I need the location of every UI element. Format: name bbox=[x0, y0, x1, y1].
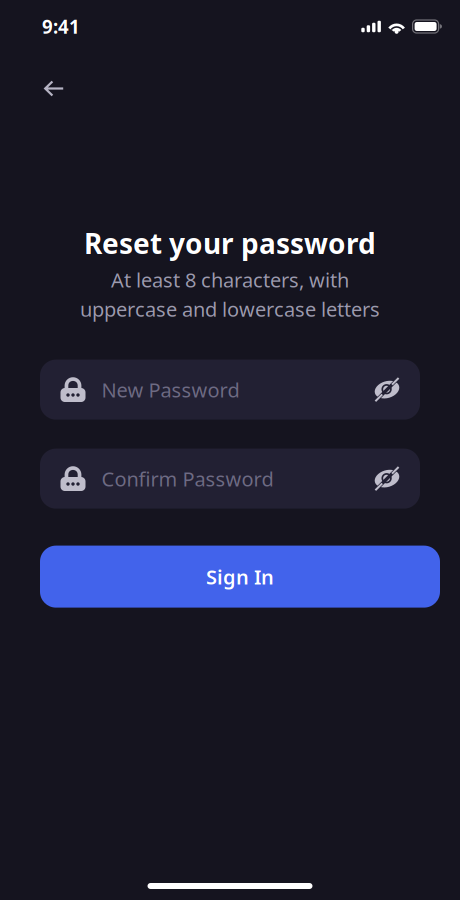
staticText: Confirm Password bbox=[101, 465, 273, 492]
staticText: uppercase and lowercase letters bbox=[80, 295, 380, 323]
button[interactable]: Show password bbox=[367, 455, 407, 503]
button[interactable]: Confirm Password bbox=[40, 449, 367, 509]
staticText: 9:41 bbox=[42, 14, 80, 39]
staticText: New Password bbox=[101, 376, 239, 403]
button[interactable]: Back bbox=[32, 66, 76, 110]
button[interactable]: Show password bbox=[367, 366, 407, 414]
staticText: Reset your password bbox=[84, 224, 376, 262]
button[interactable]: Sign In bbox=[40, 546, 440, 608]
button[interactable]: New Password bbox=[40, 360, 367, 420]
staticText: Sign In bbox=[206, 563, 274, 590]
staticText: At least 8 characters, with bbox=[111, 266, 349, 293]
